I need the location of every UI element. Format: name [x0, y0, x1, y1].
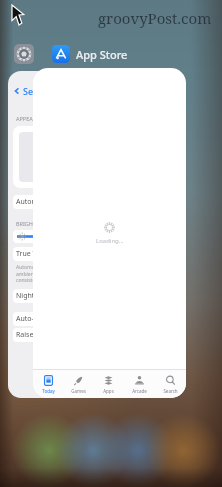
button[interactable]: Today	[33, 370, 63, 398]
button[interactable]: Apps	[93, 370, 124, 398]
button[interactable]: Raise to Wake	[13, 328, 73, 342]
button[interactable]: True Tone	[13, 247, 73, 261]
staticText: Automatically adapt ambient lighting to …	[16, 264, 63, 283]
staticText: Arcade	[132, 388, 147, 394]
button[interactable]: Night Shift	[13, 289, 73, 303]
staticText: Automatic	[16, 197, 50, 207]
staticText: Today	[42, 388, 55, 394]
button[interactable]: Arcade	[124, 370, 155, 398]
staticText: App Store	[76, 47, 128, 62]
staticText: Auto-Lock	[16, 314, 49, 324]
button[interactable]: Settings	[14, 44, 34, 64]
staticText: groovyPost.com	[98, 8, 212, 28]
staticText: Games	[71, 388, 86, 394]
staticText: Settings	[23, 85, 59, 97]
staticText: BRIGHTNESS	[16, 220, 50, 227]
staticText: Night Shift	[16, 291, 52, 301]
button[interactable]: App Store	[52, 45, 70, 63]
staticText: Raise to Wake	[16, 330, 62, 340]
staticText: Loading...	[96, 237, 124, 245]
button[interactable]: Loading...	[33, 68, 186, 398]
button[interactable]: Settings	[8, 71, 78, 398]
button[interactable]: Automatic	[13, 195, 73, 209]
staticText: True Tone	[16, 249, 49, 259]
staticText: APPEARANCE	[16, 115, 51, 122]
button[interactable]: Games	[63, 370, 93, 398]
staticText: Search	[163, 388, 178, 394]
button[interactable]: Auto-Lock	[13, 312, 73, 326]
staticText: Apps	[103, 388, 114, 394]
button[interactable]: Search	[155, 370, 186, 398]
